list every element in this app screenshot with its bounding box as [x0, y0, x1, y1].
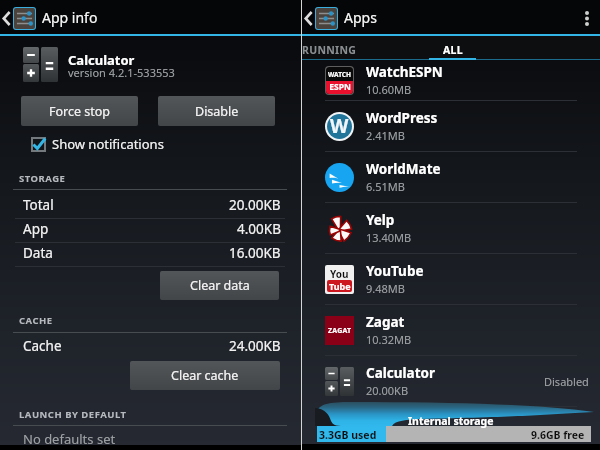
button[interactable]: Navigate up	[302, 0, 342, 36]
button[interactable]: Disable	[158, 96, 275, 126]
button[interactable]: Calculator	[302, 356, 600, 406]
staticText: 2.41MB	[366, 128, 405, 143]
staticText: 6.51MB	[366, 179, 405, 194]
staticText: Data	[23, 244, 53, 262]
staticText: Calculator	[68, 51, 135, 69]
button[interactable]: Clear cache	[130, 361, 280, 390]
staticText: 10.32MB	[366, 332, 412, 347]
staticText: Disabled	[544, 374, 589, 389]
staticText: 3.3GB used	[319, 428, 377, 442]
staticText: CACHE	[19, 314, 53, 327]
staticText: ESPN	[329, 81, 351, 93]
staticText: ZAGAT	[328, 326, 352, 336]
staticText: YouTube	[366, 262, 424, 280]
staticText: WordPress	[366, 109, 438, 127]
button[interactable]: ALL	[428, 36, 478, 60]
staticText: Force stop	[49, 103, 111, 120]
staticText: App info	[42, 8, 98, 27]
staticText: You	[330, 267, 349, 279]
button[interactable]: ZAGAT	[302, 305, 600, 355]
staticText: ALL	[443, 43, 463, 57]
staticText: Apps	[344, 8, 377, 27]
other: Navigate up	[305, 12, 312, 25]
staticText: Zagat	[366, 313, 405, 331]
button[interactable]: Yelp	[302, 203, 600, 253]
button[interactable]: RUNNING	[302, 36, 412, 60]
staticText: WorldMate	[366, 160, 441, 178]
button[interactable]: Data	[0, 243, 301, 267]
staticText: Show notifications	[52, 135, 164, 153]
staticText: No defaults set	[23, 430, 116, 448]
staticText: Cache	[23, 337, 62, 355]
staticText: RUNNING	[302, 43, 357, 57]
staticText: Clear data	[190, 277, 250, 294]
button[interactable]: Navigate up	[0, 0, 40, 36]
other: Navigate up	[3, 12, 10, 25]
staticText: Disable	[195, 103, 239, 120]
button[interactable]: More options	[574, 0, 600, 36]
staticText: 24.00KB	[229, 337, 281, 355]
button[interactable]: W	[302, 101, 600, 151]
button[interactable]: WorldMate	[302, 152, 600, 202]
button[interactable]: Force stop	[21, 96, 138, 126]
staticText: Calculator	[366, 364, 435, 382]
staticText: Total	[23, 196, 54, 214]
button[interactable]: WATCH	[302, 60, 600, 100]
button[interactable]: Cache	[0, 336, 301, 360]
staticText: W	[330, 113, 349, 139]
button[interactable]: App	[0, 219, 301, 243]
button[interactable]: Show notifications	[29, 133, 166, 155]
staticText: Tube	[329, 280, 351, 292]
staticText: 4.00KB	[237, 220, 281, 238]
button[interactable]: You	[302, 254, 600, 304]
staticText: 16.00KB	[229, 244, 281, 262]
staticText: 20.00KB	[229, 196, 281, 214]
staticText: version 4.2.1-533553	[68, 65, 175, 80]
staticText: WatchESPN	[366, 63, 443, 81]
staticText: App	[23, 220, 49, 238]
staticText: 9.6GB free	[531, 428, 585, 442]
staticText: Clear cache	[171, 367, 239, 384]
button[interactable]: Total	[0, 195, 301, 219]
staticText: 13.40MB	[366, 230, 412, 245]
staticText: WATCH	[328, 70, 351, 79]
button[interactable]: Clear data	[160, 271, 279, 300]
staticText: LAUNCH BY DEFAULT	[19, 408, 127, 421]
staticText: STORAGE	[19, 172, 66, 185]
staticText: 20.00KB	[366, 383, 409, 398]
staticText: 10.60MB	[366, 82, 412, 97]
staticText: Yelp	[366, 211, 395, 229]
staticText: Internal storage	[408, 414, 494, 428]
staticText: 9.48MB	[366, 281, 405, 296]
